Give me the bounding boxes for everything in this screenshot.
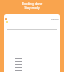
staticText: Booking done Stay ready [0,2,64,9]
staticText: Details [51,17,59,20]
button[interactable]: Details [5,17,59,20]
